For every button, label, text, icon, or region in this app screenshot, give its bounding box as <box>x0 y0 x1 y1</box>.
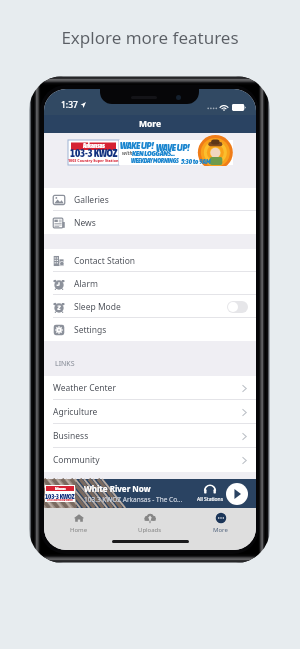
staticText: Explore more features <box>0 26 300 49</box>
staticText: Uploads <box>138 526 162 534</box>
staticText: 5:30 to 9AM <box>181 157 211 165</box>
staticText: Alarm <box>74 278 98 290</box>
button[interactable]: Business <box>44 424 256 448</box>
staticText: 103-3 KWOZ <box>70 147 118 160</box>
staticText: Galleries <box>74 194 109 206</box>
staticText: White River Now <box>84 483 151 494</box>
staticText: with <box>122 150 133 157</box>
staticText: More <box>139 118 162 130</box>
button[interactable]: Play <box>226 483 248 505</box>
staticText: 1003 Country Super Station <box>47 499 73 501</box>
staticText: Community <box>53 454 100 466</box>
button[interactable]: Agriculture <box>44 400 256 424</box>
staticText: Settings <box>74 324 107 336</box>
staticText: News <box>74 217 96 229</box>
button[interactable]: Uploads <box>114 508 185 534</box>
button[interactable]: Now playing artwork <box>44 479 76 508</box>
staticText: WAKE UP! <box>120 140 154 151</box>
staticText: 1003 Country Super Station <box>68 158 119 163</box>
staticText: Arkansas <box>83 142 105 149</box>
staticText: Contact Station <box>74 255 136 267</box>
button[interactable]: Weather Center <box>44 376 256 400</box>
staticText: Arkansas <box>55 487 66 491</box>
staticText: 1:37 <box>61 99 78 111</box>
staticText: WEEKDAY MORNINGS <box>131 157 179 164</box>
staticText: 103.3 KWOZ Arkansas - The Co... <box>84 495 183 504</box>
button[interactable]: Home <box>44 508 114 534</box>
staticText: Weather Center <box>53 382 116 394</box>
staticText: Home <box>70 526 88 534</box>
staticText: Business <box>53 430 89 442</box>
staticText: KEN LOGGANS... <box>132 149 175 158</box>
staticText: WAVE UP! <box>156 142 190 153</box>
staticText: Sleep Mode <box>74 301 121 313</box>
staticText: All Stations <box>197 496 224 503</box>
button[interactable]: All Stations <box>194 479 226 508</box>
button[interactable]: More <box>185 508 256 534</box>
button[interactable]: News <box>44 211 256 234</box>
button[interactable]: Community <box>44 448 256 472</box>
staticText: Agriculture <box>53 406 98 418</box>
staticText: More <box>213 526 228 534</box>
button[interactable]: Galleries <box>44 188 256 211</box>
button[interactable]: Sleep Mode <box>44 295 256 318</box>
button[interactable]: Alarm <box>44 272 256 295</box>
staticText: 103-3 KWOZ <box>45 492 75 500</box>
staticText: LINKS <box>55 359 75 369</box>
button[interactable]: Settings <box>44 318 256 341</box>
button[interactable]: Arkansas <box>44 133 256 166</box>
button[interactable]: Contact Station <box>44 249 256 272</box>
